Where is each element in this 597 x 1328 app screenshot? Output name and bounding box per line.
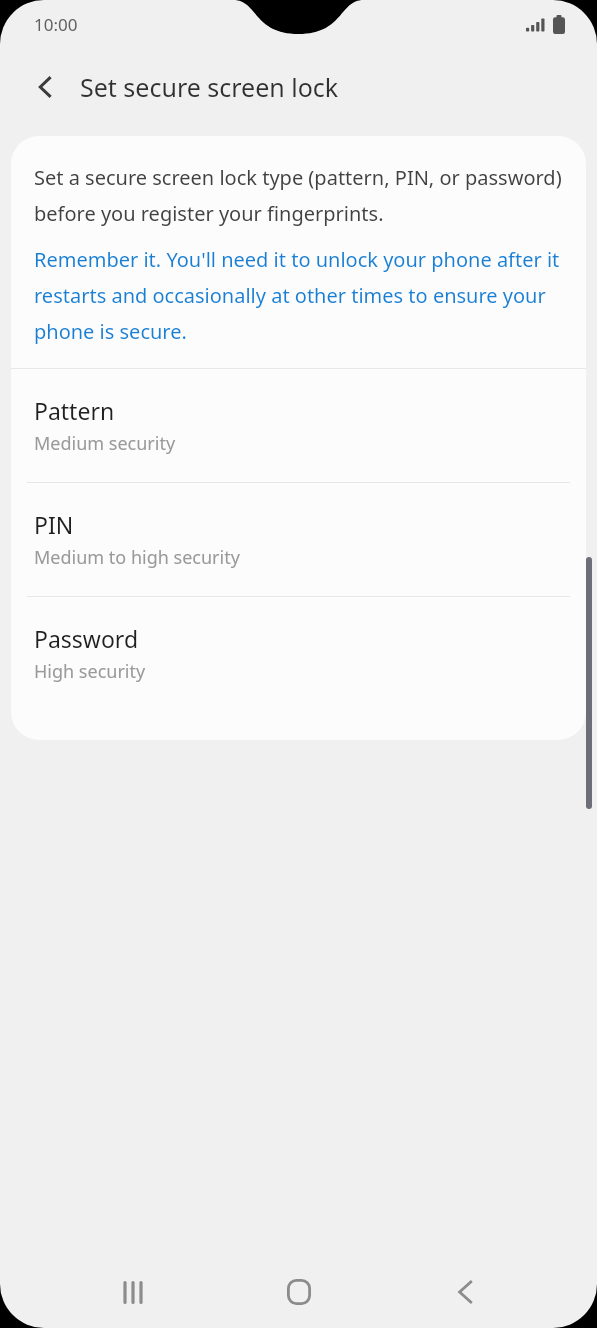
staticText: Set secure screen lock [80,70,339,104]
button[interactable]: Home [275,1268,323,1316]
staticText: Password [34,623,139,654]
staticText: Set a secure screen lock type (pattern, … [34,157,563,229]
button[interactable]: Back [22,63,70,111]
button[interactable]: Pattern [11,369,586,482]
staticText: Pattern [34,395,115,426]
button[interactable]: PIN [11,483,586,596]
staticText: 10:00 [34,13,78,36]
staticText: High security [34,659,146,684]
staticText: Remember it. You'll need it to unlock yo… [34,239,563,347]
button[interactable]: Password [11,597,586,710]
staticText: Medium security [34,431,176,456]
staticText: Medium to high security [34,545,240,570]
button[interactable]: Recent apps [109,1268,157,1316]
button[interactable]: Back [441,1268,489,1316]
staticText: PIN [34,509,74,540]
